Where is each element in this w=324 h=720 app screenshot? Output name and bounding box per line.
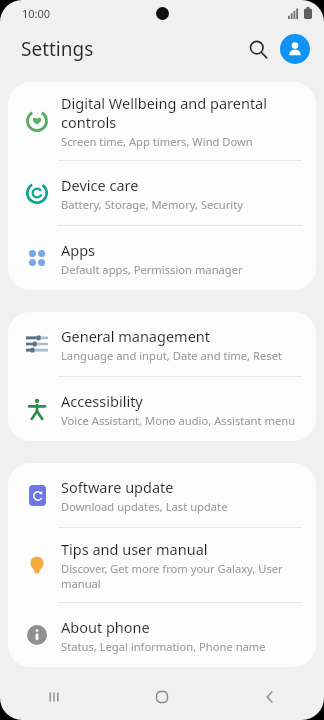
button[interactable]: Home [108, 674, 216, 720]
button[interactable]: Apps [8, 226, 316, 290]
button[interactable]: Accessibility [8, 377, 316, 441]
staticText: About phone [61, 617, 150, 637]
staticText: Tips and user manual [61, 539, 208, 559]
staticText: Digital Wellbeing and parental controls [61, 93, 300, 132]
staticText: Voice Assistant, Mono audio, Assistant m… [61, 413, 296, 428]
button[interactable]: General management [8, 312, 316, 376]
staticText: Default apps, Permission manager [61, 262, 243, 277]
staticText: Battery, Storage, Memory, Security [61, 197, 243, 212]
staticText: Discover, Get more from your Galaxy, Use… [61, 561, 300, 591]
staticText: Device care [61, 175, 139, 195]
staticText: 10:00 [22, 6, 51, 21]
button[interactable]: Device care [8, 161, 316, 225]
button[interactable]: Account [280, 34, 310, 64]
button[interactable]: Search [240, 31, 276, 67]
button[interactable]: Tips and user manual [8, 528, 316, 602]
button[interactable]: Digital Wellbeing and parental controls [8, 82, 316, 160]
button[interactable]: About phone [8, 603, 316, 667]
staticText: Screen time, App timers, Wind Down [61, 134, 253, 149]
staticText: Settings [21, 36, 94, 62]
staticText: Download updates, Last update [61, 499, 228, 514]
button[interactable]: Back [216, 674, 324, 720]
button[interactable]: Software update [8, 463, 316, 527]
staticText: Language and input, Date and time, Reset [61, 348, 282, 363]
staticText: Accessibility [61, 391, 143, 411]
staticText: Status, Legal information, Phone name [61, 639, 266, 654]
staticText: Software update [61, 477, 174, 497]
staticText: General management [61, 326, 211, 346]
staticText: Apps [61, 240, 96, 260]
button[interactable]: Recents [0, 674, 108, 720]
